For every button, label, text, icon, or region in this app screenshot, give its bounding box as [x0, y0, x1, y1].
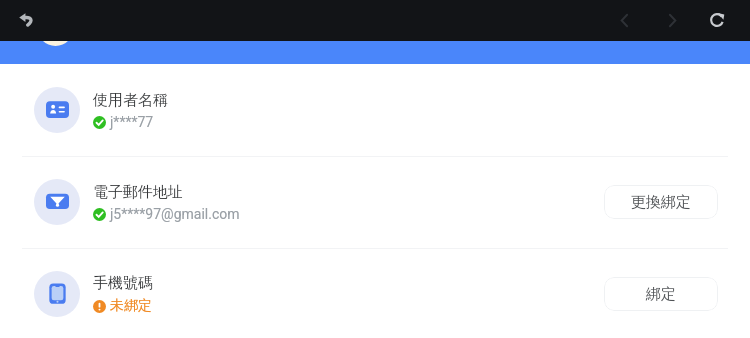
- button[interactable]: 更換綁定: [604, 185, 718, 219]
- staticText: 手機號碼: [93, 274, 153, 293]
- button[interactable]: Navigate forward: [657, 5, 687, 35]
- staticText: 更換綁定: [631, 193, 691, 212]
- button[interactable]: Back: [11, 5, 41, 35]
- button[interactable]: Navigate back: [609, 5, 639, 35]
- button[interactable]: 電子郵件地址: [0, 156, 750, 248]
- button[interactable]: Refresh: [702, 5, 732, 35]
- staticText: 使用者名稱: [93, 91, 168, 110]
- staticText: 未綁定: [110, 297, 152, 315]
- button[interactable]: 手機號碼: [0, 248, 750, 338]
- button[interactable]: 綁定: [604, 277, 718, 311]
- button[interactable]: 使用者名稱: [0, 64, 750, 156]
- staticText: 綁定: [646, 285, 676, 304]
- staticText: 電子郵件地址: [93, 183, 183, 202]
- staticText: j5****97@gmail.com: [110, 206, 240, 222]
- staticText: j****77: [110, 114, 154, 130]
